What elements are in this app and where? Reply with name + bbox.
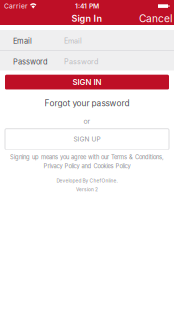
staticText: SIGN UP bbox=[73, 135, 100, 143]
button[interactable]: Forgot your password bbox=[0, 99, 174, 108]
staticText: or bbox=[83, 117, 90, 125]
button[interactable]: SIGN UP bbox=[5, 129, 169, 150]
button[interactable]: SIGN IN bbox=[5, 75, 169, 90]
staticText: 1:41 PM bbox=[75, 2, 99, 10]
staticText: Privacy Policy and Cookies Policy bbox=[43, 163, 130, 170]
staticText: Email bbox=[13, 36, 32, 45]
button[interactable]: Cancel bbox=[137, 12, 174, 25]
staticText: Carrier bbox=[4, 2, 28, 10]
staticText: SIGN IN bbox=[72, 77, 101, 87]
staticText: Developed By ChefOnline. bbox=[56, 178, 117, 183]
staticText: Email bbox=[64, 37, 82, 45]
staticText: Password bbox=[64, 57, 98, 66]
staticText: Password bbox=[13, 57, 48, 66]
staticText: Forgot your password bbox=[44, 98, 129, 108]
staticText: Sign In bbox=[71, 13, 102, 24]
staticText: Signing up means you agree with our Term… bbox=[10, 154, 164, 161]
staticText: Cancel bbox=[139, 12, 172, 25]
staticText: Version 2 bbox=[76, 186, 98, 192]
